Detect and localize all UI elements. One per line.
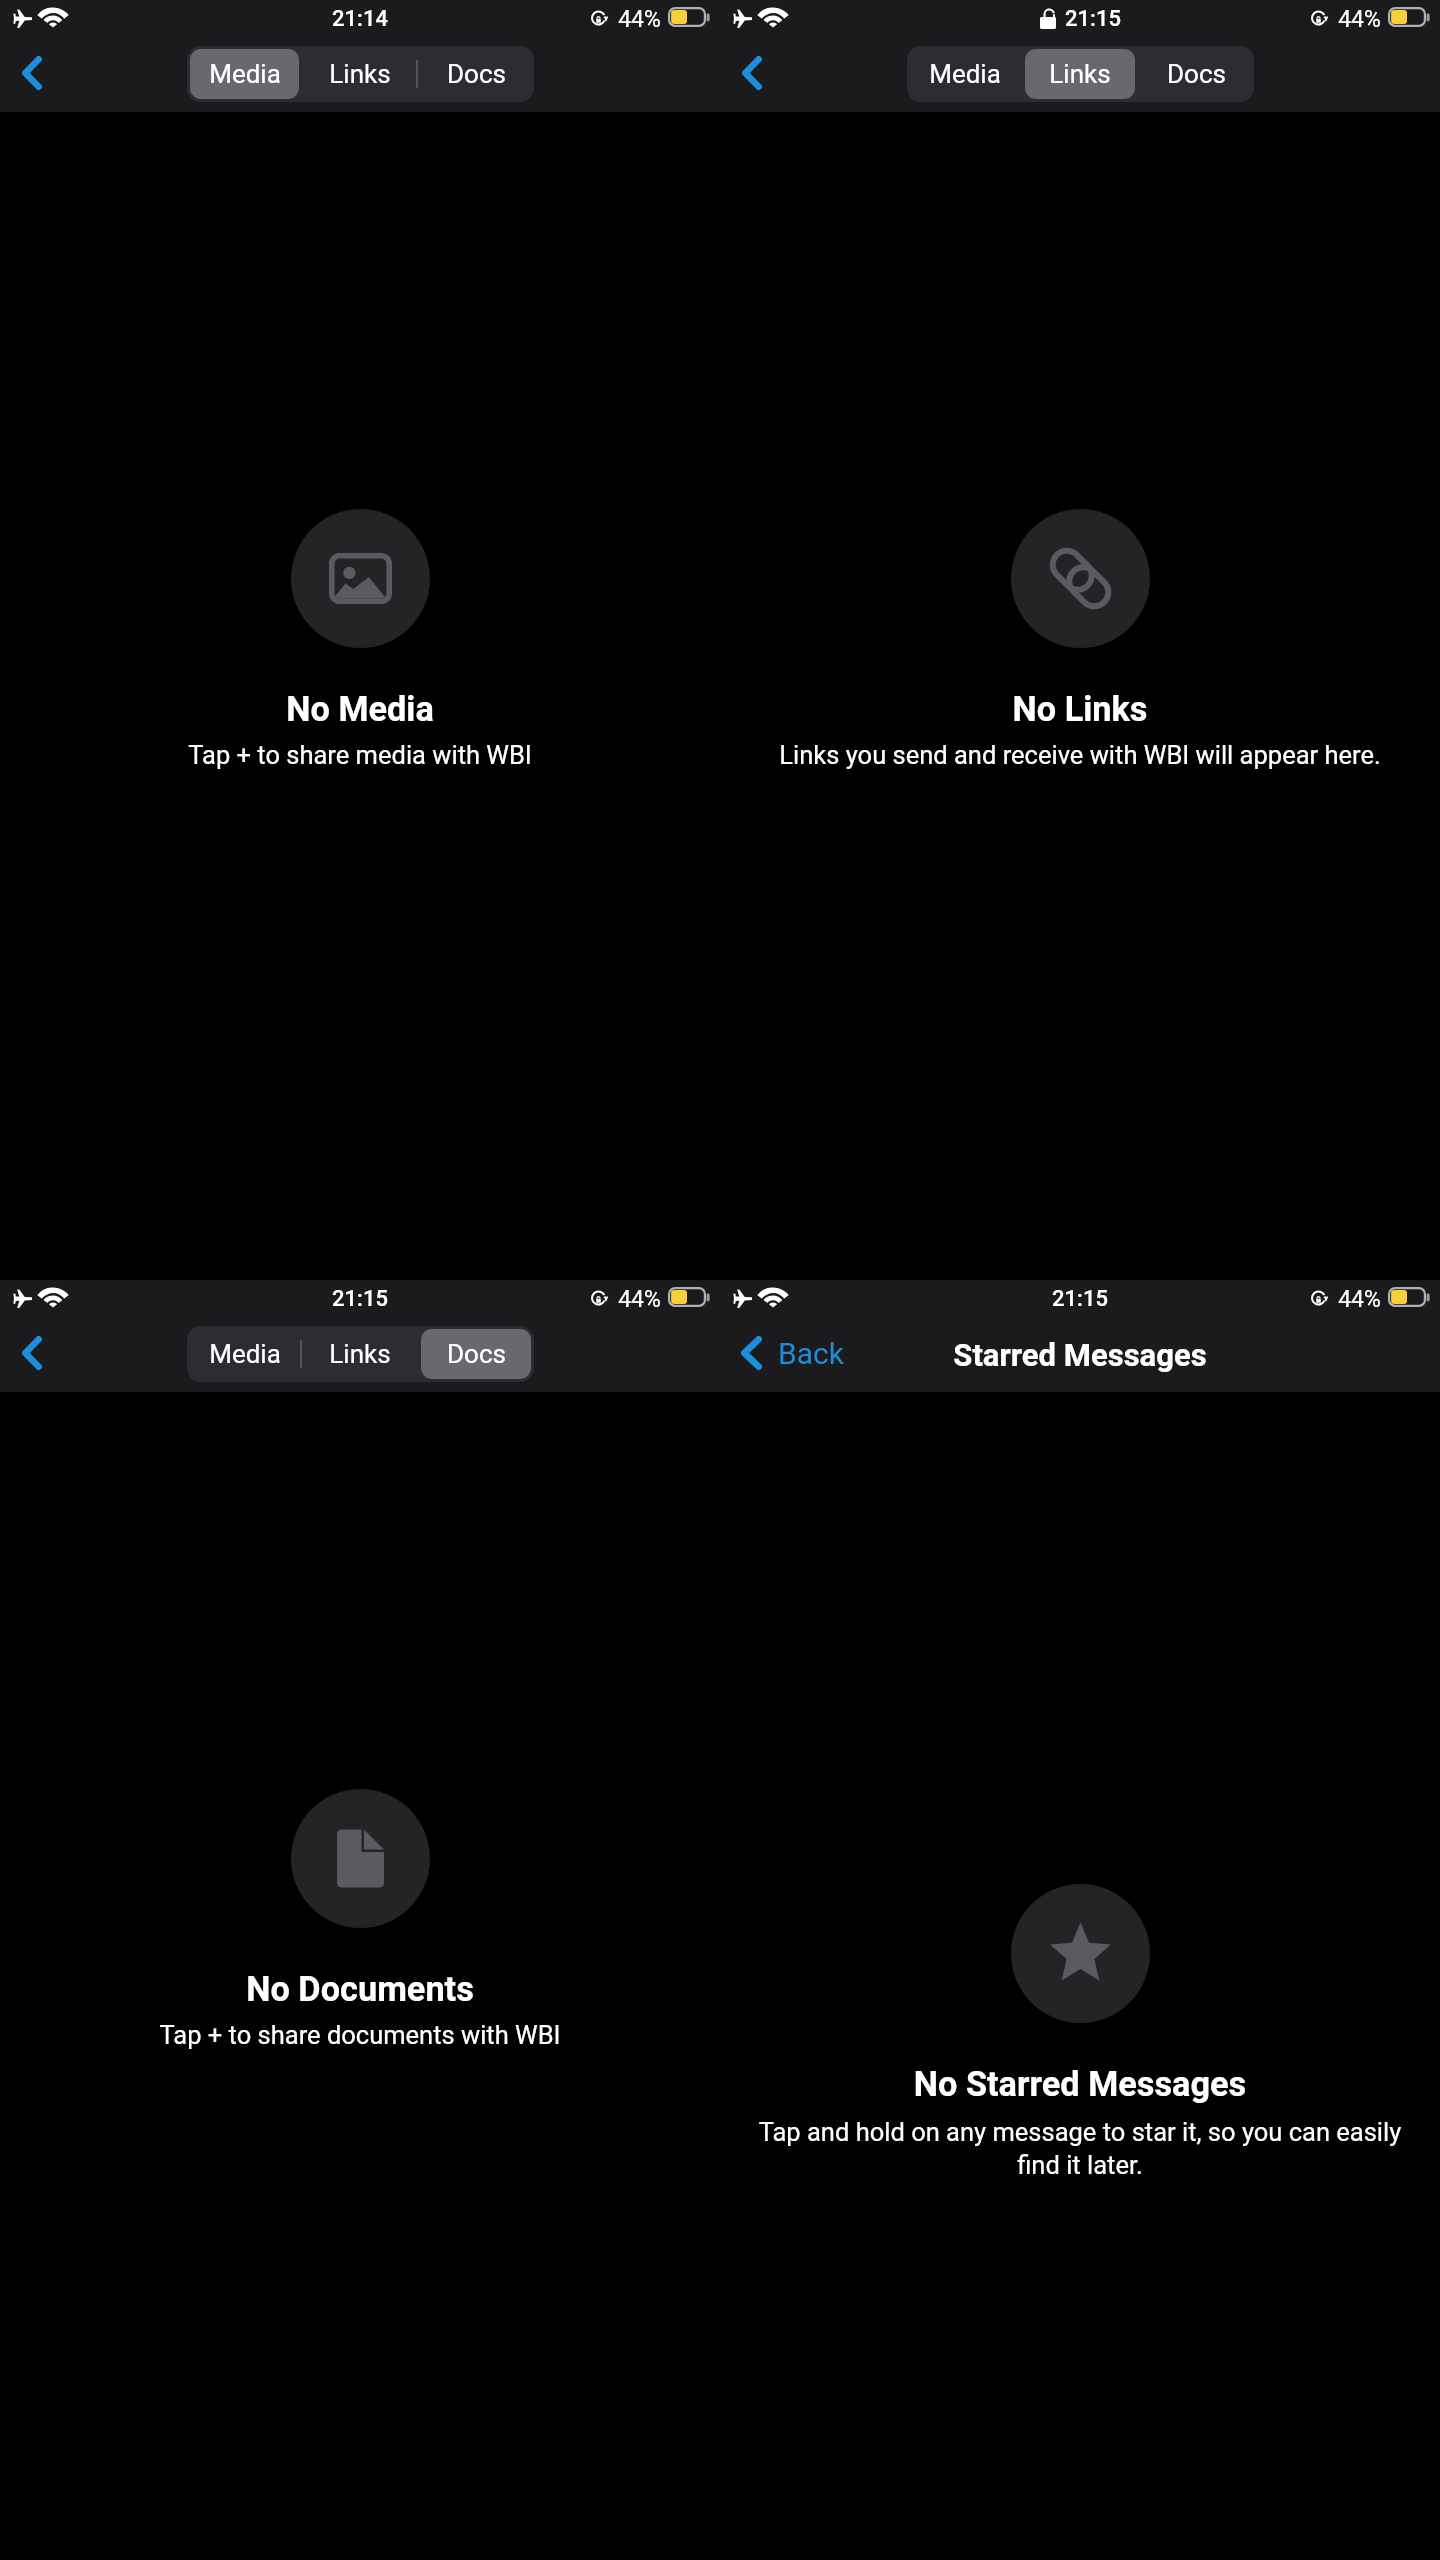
button[interactable]: Docs <box>1141 49 1251 99</box>
staticText: 44% <box>1338 6 1381 33</box>
staticText: Docs <box>1167 59 1226 89</box>
staticText: Tap and hold on any message to star it, … <box>754 2117 1406 2180</box>
button[interactable]: Links <box>305 49 415 99</box>
staticText: 21:15 <box>332 1286 388 1312</box>
staticText: Media <box>209 1339 281 1369</box>
staticText: Links <box>329 1339 391 1369</box>
staticText: 21:15 <box>1065 6 1121 32</box>
staticText: 44% <box>618 6 661 33</box>
staticText: No Media <box>0 689 720 729</box>
button[interactable]: Back <box>722 42 782 104</box>
staticText: Starred Messages <box>953 1337 1207 1373</box>
staticText: Tap + to share documents with WBI <box>90 2020 630 2050</box>
staticText: Tap + to share media with WBI <box>100 740 620 770</box>
staticText: 21:15 <box>1052 1286 1108 1312</box>
button[interactable]: Back <box>2 42 62 104</box>
staticText: 44% <box>618 1286 661 1313</box>
button[interactable]: Docs <box>421 49 531 99</box>
staticText: No Documents <box>0 1969 720 2009</box>
button[interactable]: Links <box>305 1329 415 1379</box>
button[interactable]: Docs <box>421 1329 531 1379</box>
staticText: Docs <box>447 59 506 89</box>
button[interactable]: Links <box>1025 49 1135 99</box>
button[interactable]: Back <box>741 1322 844 1384</box>
button[interactable]: Back <box>2 1322 62 1384</box>
button[interactable]: Media <box>910 49 1019 99</box>
staticText: Media <box>209 59 281 89</box>
staticText: 44% <box>1338 1286 1381 1313</box>
staticText: No Starred Messages <box>720 2064 1440 2104</box>
button[interactable]: Media <box>190 1329 299 1379</box>
staticText: Back <box>778 1336 844 1371</box>
staticText: No Links <box>720 689 1440 729</box>
staticText: Links you send and receive with WBI will… <box>750 740 1410 770</box>
staticText: Media <box>929 59 1001 89</box>
button[interactable]: Media <box>190 49 299 99</box>
staticText: Links <box>1049 59 1111 89</box>
staticText: 21:14 <box>332 6 388 32</box>
staticText: Links <box>329 59 391 89</box>
staticText: Docs <box>447 1339 506 1369</box>
